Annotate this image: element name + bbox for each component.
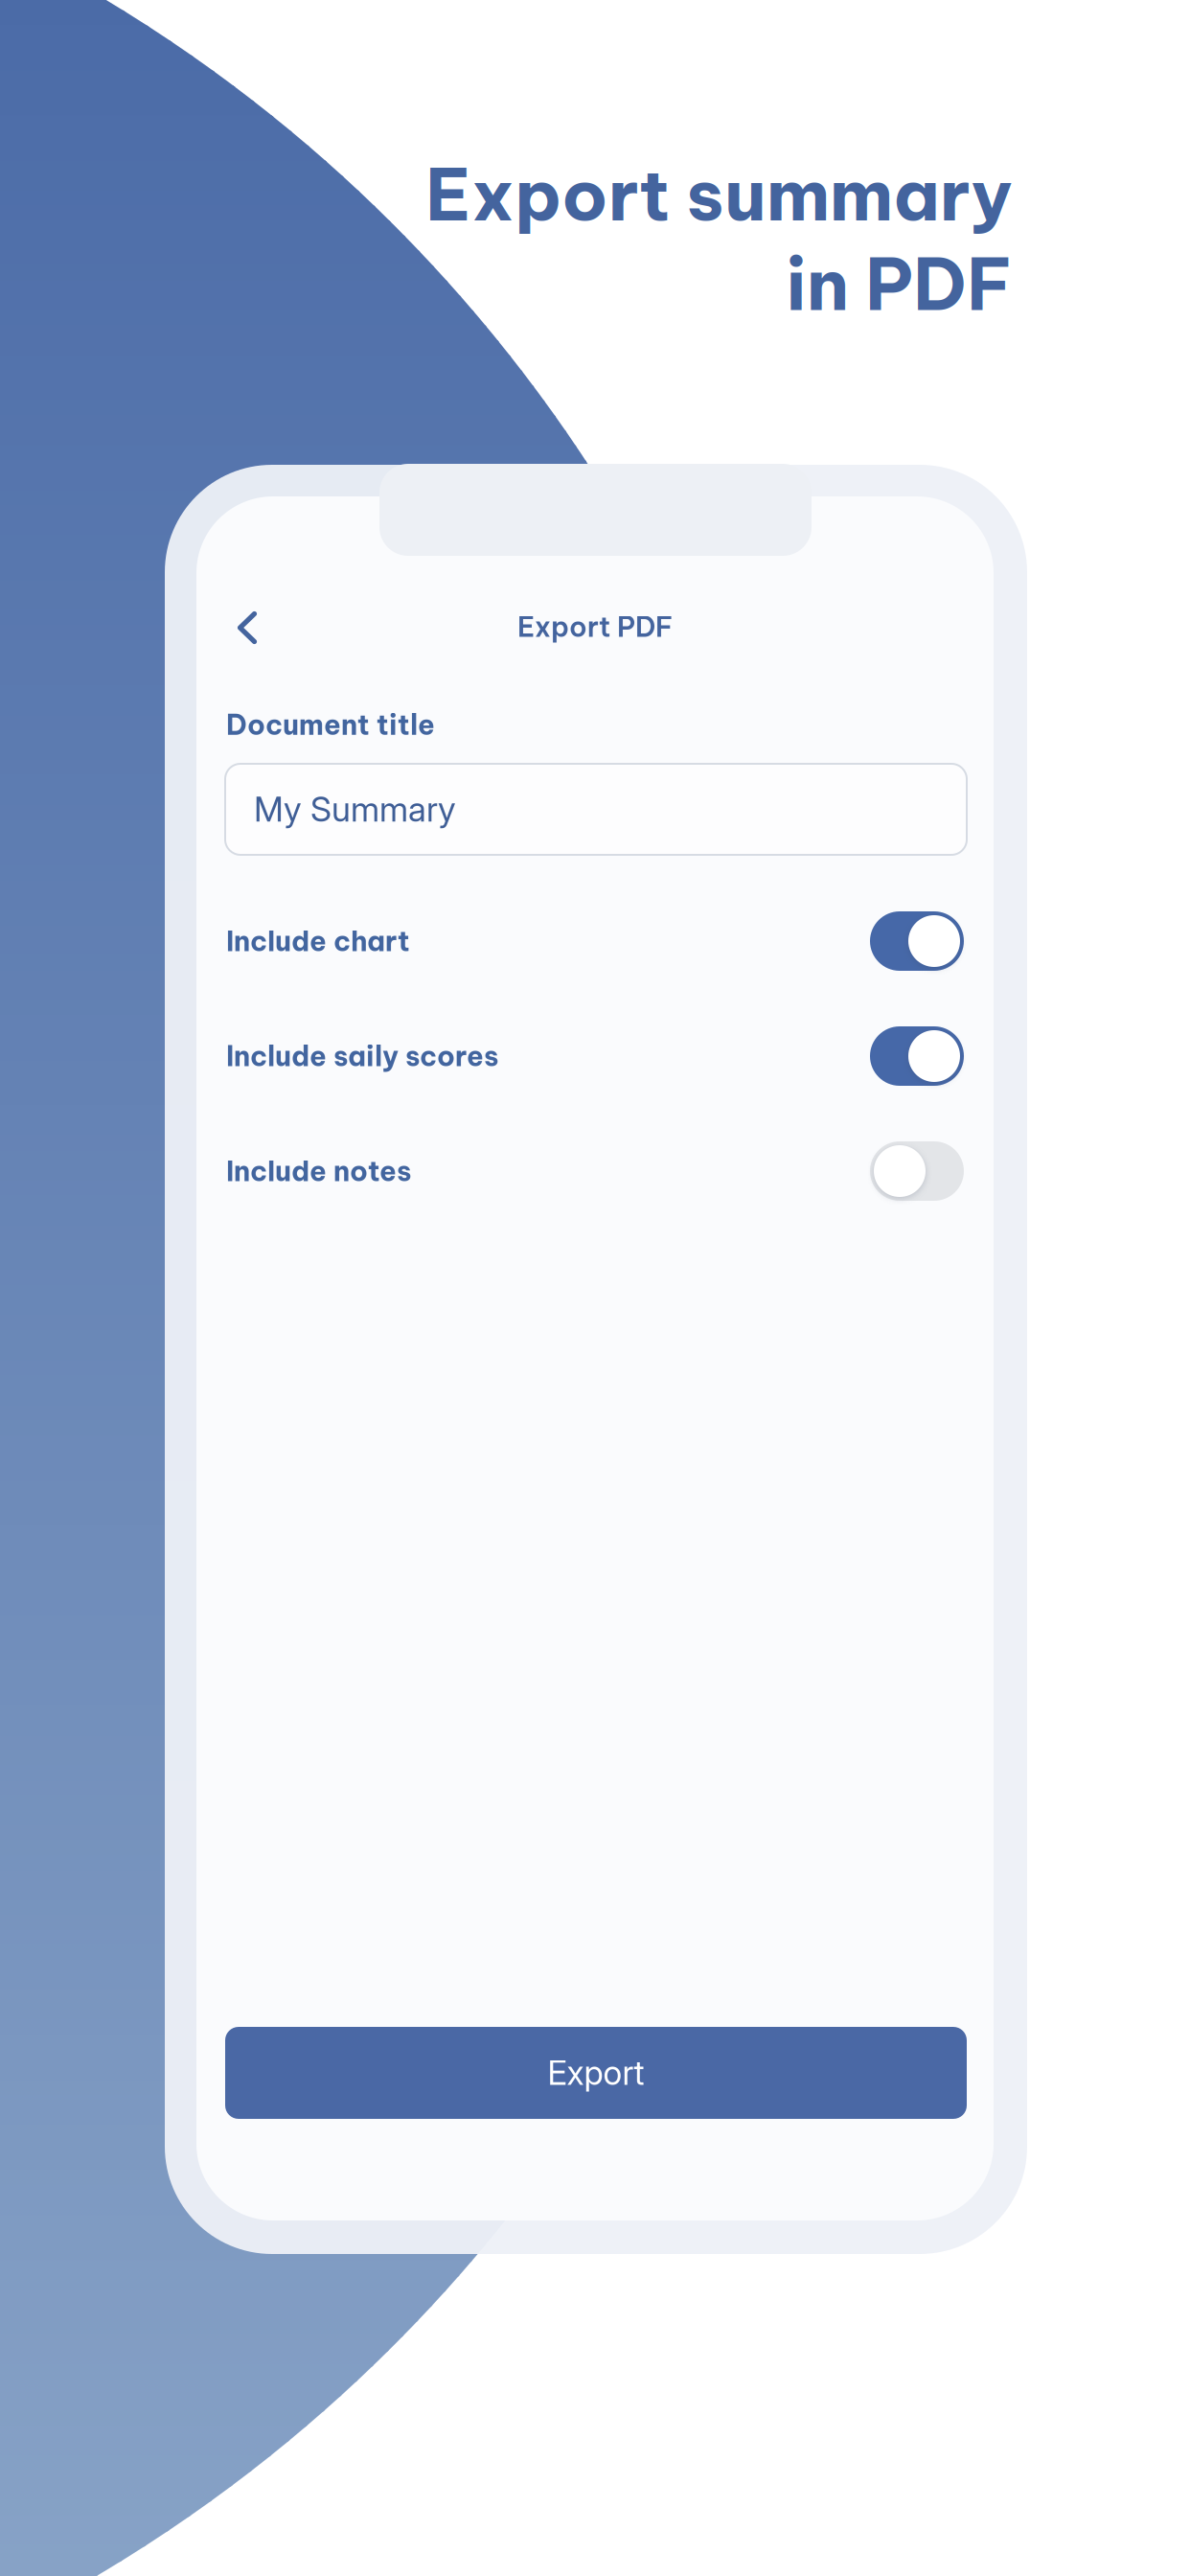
staticText: Document title [226, 707, 435, 742]
staticText: Include chart [226, 924, 410, 959]
staticText: My Summary [254, 789, 456, 830]
button[interactable]: Include chart [226, 911, 964, 971]
button[interactable]: My Summary [225, 764, 967, 855]
button[interactable]: Back [213, 593, 282, 662]
button[interactable]: Include notes [226, 1141, 964, 1201]
staticText: Include notes [226, 1154, 411, 1189]
staticText: Export summary [425, 149, 1013, 239]
staticText: Export [548, 2053, 644, 2093]
staticText: Export PDF [517, 609, 673, 644]
staticText: in PDF [786, 239, 1013, 329]
button[interactable]: Export [225, 2027, 967, 2119]
button[interactable]: Include saily scores [226, 1026, 964, 1086]
staticText: Include saily scores [226, 1039, 498, 1074]
